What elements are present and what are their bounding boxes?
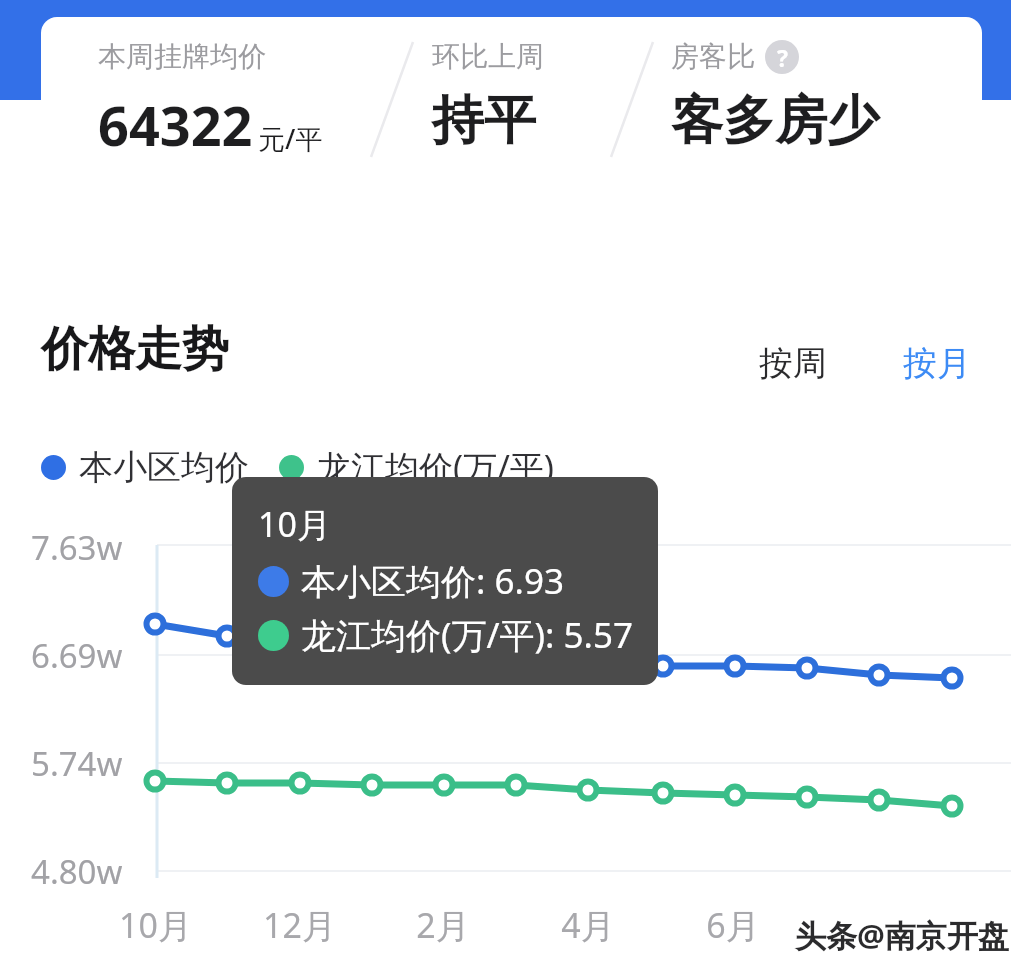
button[interactable]: 本周挂牌均价 bbox=[41, 17, 982, 240]
staticText: 龙江均价(万/平) bbox=[317, 444, 555, 490]
staticText: 5.74w bbox=[31, 741, 123, 786]
button[interactable]: 按周 bbox=[753, 336, 833, 391]
staticText: 6.69w bbox=[31, 633, 123, 678]
staticText: 按周 bbox=[759, 342, 827, 385]
staticText: 环比上周 bbox=[432, 39, 544, 74]
staticText: 头条@南京开盘 bbox=[795, 914, 1009, 956]
staticText: 本小区均价: 6.93 bbox=[301, 557, 564, 605]
staticText: 12月 bbox=[263, 902, 336, 948]
staticText: 价格走势 bbox=[41, 320, 229, 379]
staticText: 4月 bbox=[561, 902, 615, 948]
staticText: 按月 bbox=[903, 342, 971, 385]
staticText: 房客比 bbox=[671, 39, 755, 74]
staticText: 客多房少 bbox=[671, 88, 879, 154]
staticText: 64322 bbox=[98, 88, 253, 162]
staticText: 10月 bbox=[258, 501, 331, 547]
staticText: 6月 bbox=[706, 902, 760, 948]
staticText: 本小区均价 bbox=[79, 446, 249, 489]
staticText: 7.63w bbox=[31, 525, 123, 570]
staticText: ? bbox=[777, 42, 788, 73]
staticText: 龙江均价(万/平): 5.57 bbox=[301, 611, 633, 659]
staticText: 本周挂牌均价 bbox=[98, 39, 266, 74]
button[interactable]: 按月 bbox=[897, 336, 977, 391]
staticText: 10月 bbox=[119, 902, 192, 948]
button[interactable]: 房客比说明 bbox=[765, 40, 799, 74]
staticText: 持平 bbox=[432, 88, 536, 154]
staticText: 2月 bbox=[416, 902, 470, 948]
staticText: 4.80w bbox=[31, 849, 123, 894]
staticText: 元/平 bbox=[258, 120, 323, 157]
